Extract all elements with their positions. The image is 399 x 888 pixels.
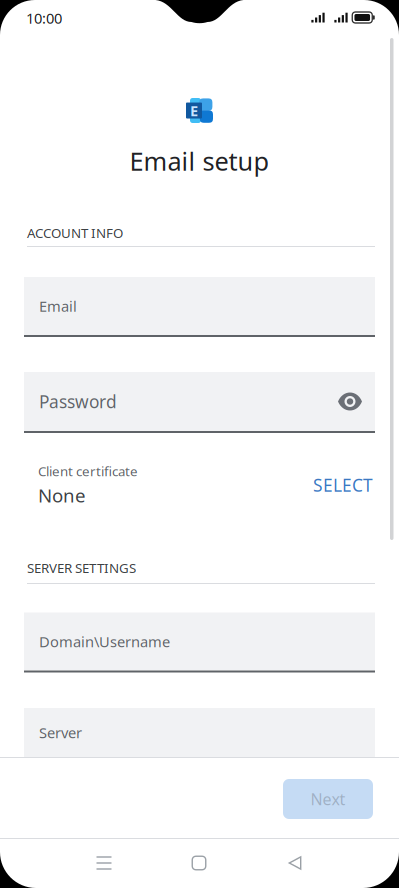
staticText: Password	[39, 390, 117, 413]
button[interactable]: Email	[24, 277, 375, 337]
staticText: ACCOUNT INFO	[27, 224, 123, 242]
staticText: Client certificate	[38, 462, 138, 480]
button[interactable]: Next	[283, 779, 373, 819]
button[interactable]: Recent apps	[82, 841, 126, 885]
staticText: Next	[310, 788, 345, 810]
staticText: Email setup	[129, 144, 269, 178]
button[interactable]: Password	[24, 372, 375, 433]
button[interactable]: Client certificate	[24, 463, 375, 507]
staticText: Domain\Username	[39, 632, 170, 651]
staticText: Server	[39, 723, 82, 742]
button[interactable]: Back	[273, 841, 317, 885]
staticText: Email	[39, 296, 77, 316]
staticText: E	[190, 101, 198, 120]
staticText: None	[38, 483, 86, 508]
button[interactable]: Home	[177, 841, 221, 885]
button[interactable]: Domain\Username	[24, 612, 375, 672]
staticText: 10:00	[26, 8, 62, 28]
staticText: SERVER SETTINGS	[27, 559, 136, 577]
staticText: SELECT	[313, 473, 373, 496]
